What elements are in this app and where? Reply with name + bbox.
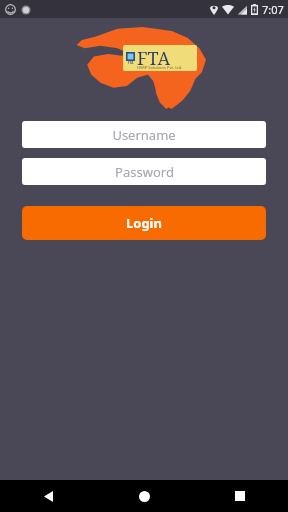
staticText: Username [112,126,176,144]
button[interactable]: Username [22,121,266,148]
button[interactable]: Recent apps [192,480,288,512]
button[interactable]: Home [96,480,192,512]
staticText: Login [126,214,162,232]
button[interactable]: Back [0,480,96,512]
staticText: Password [115,163,174,181]
staticText: FTA [137,46,171,71]
staticText: HSRP Solutions Pvt. Ltd. [137,65,183,70]
staticText: 7:07 [262,2,284,17]
button[interactable]: Login [22,206,266,240]
button[interactable]: Password [22,158,266,185]
staticText: FTA [128,61,134,65]
